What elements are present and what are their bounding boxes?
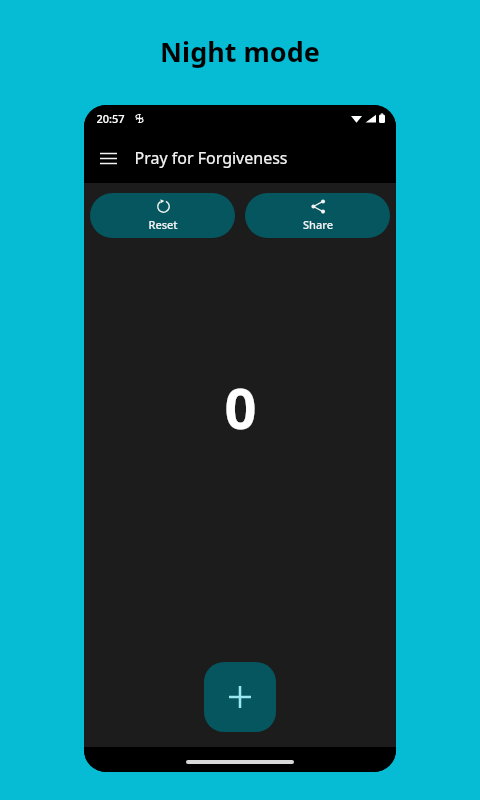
button[interactable]: Open navigation menu <box>90 140 126 176</box>
staticText: 0 <box>224 369 257 445</box>
button[interactable]: Reset <box>90 193 235 238</box>
button[interactable]: Share <box>245 193 390 238</box>
staticText: Reset <box>148 217 178 232</box>
button[interactable]: Add one <box>204 662 276 732</box>
staticText: Pray for Forgiveness <box>134 147 288 169</box>
staticText: Night mode <box>160 33 320 70</box>
staticText: Share <box>303 217 333 232</box>
staticText: 20:57 <box>96 111 125 126</box>
